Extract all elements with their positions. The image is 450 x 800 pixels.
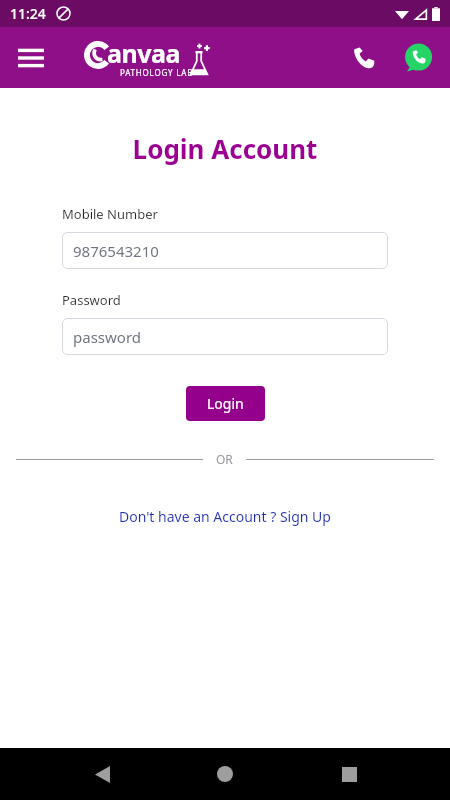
staticText: Don't have an Account ? Sign Up: [119, 507, 331, 526]
staticText: OR: [216, 451, 233, 467]
button[interactable]: password: [62, 318, 388, 355]
button[interactable]: Open navigation menu: [10, 37, 52, 79]
staticText: Login: [207, 394, 244, 413]
staticText: password: [73, 327, 141, 347]
staticText: PATHOLOGY LAB: [120, 67, 194, 78]
button[interactable]: Back: [80, 752, 124, 796]
button[interactable]: Login: [186, 386, 265, 421]
button[interactable]: Don't have an Account ? Sign Up: [107, 503, 343, 530]
button[interactable]: Recent apps: [327, 752, 371, 796]
button[interactable]: 9876543210: [62, 232, 388, 269]
button[interactable]: Call: [344, 38, 384, 78]
staticText: anvaa: [107, 36, 180, 70]
staticText: Password: [62, 291, 121, 309]
staticText: Mobile Number: [62, 205, 158, 223]
staticText: 11:24: [10, 4, 46, 23]
button[interactable]: Chat on WhatsApp: [398, 38, 438, 78]
staticText: Login Account: [0, 131, 450, 166]
button[interactable]: Canvaa Pathology Lab: [84, 34, 224, 82]
button[interactable]: Home: [203, 752, 247, 796]
staticText: 9876543210: [73, 241, 159, 261]
